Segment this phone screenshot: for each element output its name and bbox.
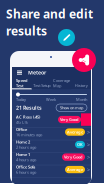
- button[interactable]: Speed Test: [12, 78, 32, 89]
- staticText: Very Good: [60, 117, 79, 122]
- button[interactable]: Show on map: [56, 104, 87, 111]
- button[interactable]: Coverage Map: [51, 78, 71, 89]
- staticText: Meteor: [28, 69, 46, 76]
- staticText: Show on map: [60, 105, 83, 110]
- staticText: 4 hours ago: [16, 157, 36, 162]
- button[interactable]: Home 1: [12, 151, 91, 163]
- staticText: Today: [16, 97, 26, 102]
- button[interactable]: Edit: [58, 29, 75, 46]
- button[interactable]: Office: [12, 126, 91, 138]
- staticText: 16 minutes ago: [16, 132, 42, 137]
- button[interactable]: AC Ross (-45): [12, 113, 91, 126]
- staticText: >: [87, 128, 90, 136]
- staticText: >: [87, 153, 90, 161]
- staticText: Average: [67, 167, 83, 172]
- staticText: >: [87, 166, 90, 173]
- staticText: >: [87, 141, 90, 148]
- staticText: Month: [76, 97, 87, 102]
- staticText: History: [75, 83, 88, 88]
- button[interactable]: History: [71, 78, 91, 89]
- staticText: Average: [67, 129, 83, 135]
- staticText: 2 hours ago: [16, 145, 36, 150]
- staticText: Home 2: [16, 139, 30, 144]
- button[interactable]: Share: [72, 48, 96, 72]
- staticText: Speed Test: [16, 78, 28, 88]
- staticText: Office Sofa: [16, 164, 35, 169]
- staticText: Office: [16, 127, 27, 132]
- staticText: OK: [77, 142, 83, 147]
- staticText: 4G LTE: [16, 120, 28, 125]
- staticText: AC Ross (-45): [16, 114, 40, 119]
- staticText: Week: [46, 97, 56, 102]
- staticText: Coverage Map: [53, 78, 70, 88]
- button[interactable]: Menu: [15, 68, 24, 76]
- staticText: Test Setup: [33, 83, 50, 88]
- button[interactable]: Test Setup: [32, 78, 52, 89]
- staticText: Home 1: [16, 152, 30, 157]
- staticText: 6 hours ago: [16, 170, 36, 175]
- staticText: Share and edit: [6, 6, 93, 22]
- staticText: 21 Results: [16, 104, 42, 111]
- staticText: Very Good: [64, 154, 83, 160]
- staticText: results: [6, 23, 47, 39]
- button[interactable]: Home 2: [12, 138, 91, 151]
- button[interactable]: Office Sofa: [12, 163, 91, 176]
